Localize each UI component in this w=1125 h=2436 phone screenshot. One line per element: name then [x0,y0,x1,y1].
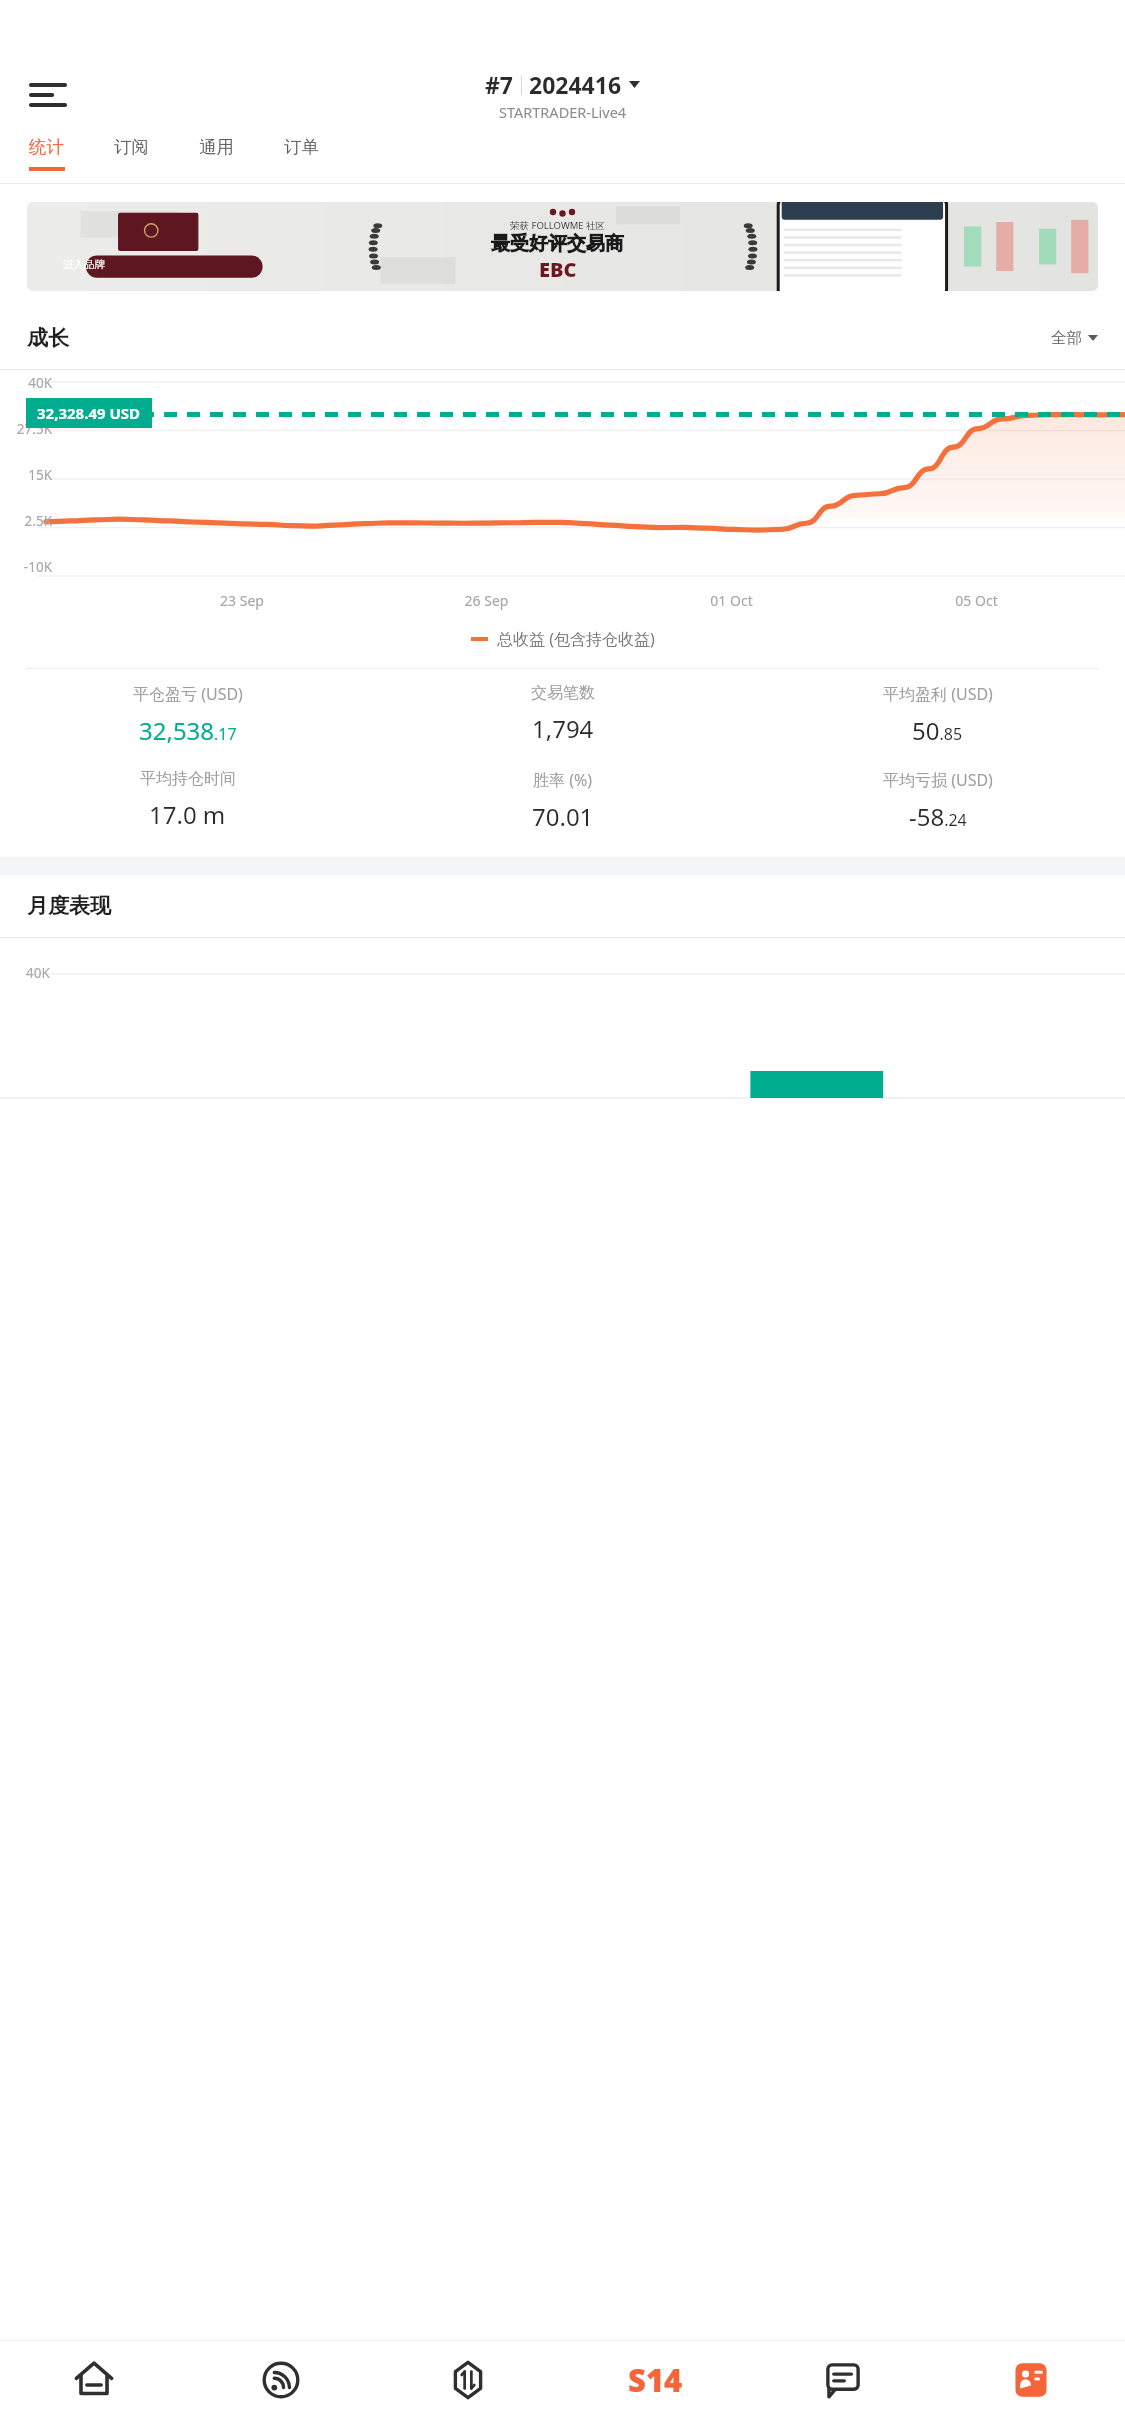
staticText: 15K [0,466,52,484]
staticText: 2.5K [0,512,52,530]
staticText: 1,794 [532,712,594,745]
staticText: 订单 [284,136,319,158]
staticText: 2024416 [529,69,622,100]
button[interactable]: Home [0,2340,187,2436]
button[interactable]: Menu [22,69,74,121]
staticText: 40K [26,964,50,982]
staticText: 32,328.49 USD [37,403,141,423]
staticText: 32,538.17 [139,714,237,747]
staticText: 平均持仓时间 [140,769,236,789]
staticText: 交易笔数 [531,683,595,703]
button[interactable]: 全部 [1051,328,1098,348]
button[interactable]: Messages [749,2340,937,2436]
staticText: 进入品牌 [63,258,105,271]
staticText: STARTRADER-Live4 [499,102,627,122]
staticText: #7 [485,69,514,100]
staticText: -10K [0,558,52,576]
button[interactable]: 荣获 FOLLOWME 社区 [27,202,1098,291]
staticText: 成长 [27,325,69,351]
staticText: 01 Oct [609,591,854,610]
staticText: 70.01 [532,800,594,833]
staticText: 总收益 (包含持仓收益) [497,628,655,650]
staticText: 全部 [1051,328,1082,348]
staticText: 胜率 (%) [533,769,593,791]
button[interactable]: 通用 [180,132,253,184]
staticText: 27.5K [0,420,52,438]
button[interactable]: S14 [561,2340,749,2436]
button[interactable]: 订单 [265,132,338,184]
staticText: S14 [628,2359,683,2401]
staticText: 通用 [199,136,234,158]
staticText: 17.0 m [149,798,226,831]
button[interactable]: 订阅 [95,132,168,184]
button[interactable]: #7 [485,69,640,122]
staticText: 平均亏损 (USD) [883,769,993,791]
staticText: 平仓盈亏 (USD) [133,683,243,705]
button[interactable]: Profile [937,2340,1125,2436]
staticText: 订阅 [114,136,149,158]
staticText: 最受好评交易商 [491,232,624,256]
staticText: 荣获 FOLLOWME 社区 [510,219,606,232]
staticText: 26 Sep [364,591,609,610]
staticText: 50.85 [912,714,963,747]
button[interactable]: 统计 [10,132,83,184]
staticText: EBC [539,256,577,283]
staticText: 05 Oct [854,591,1099,610]
button[interactable]: Feed [187,2340,374,2436]
staticText: -58.24 [909,800,967,833]
button[interactable]: Trade [374,2340,561,2436]
staticText: 月度表现 [27,893,111,919]
staticText: 统计 [29,136,64,158]
staticText: 40K [0,374,52,392]
staticText: 23 Sep [120,591,364,610]
staticText: 平均盈利 (USD) [883,683,993,705]
